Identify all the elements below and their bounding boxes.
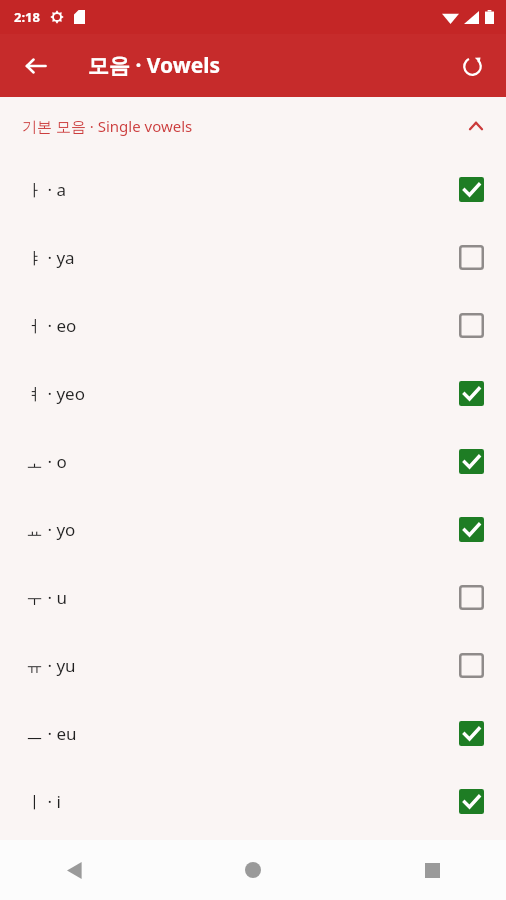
button[interactable]: ㅜ · u	[0, 563, 506, 631]
staticText: ㅗ · o	[26, 450, 67, 473]
staticText: ㅡ · eu	[26, 722, 77, 745]
staticText: 모음 · Vowels	[88, 51, 221, 80]
button[interactable]: Refresh	[448, 42, 496, 90]
button[interactable]: Back	[12, 42, 60, 90]
staticText: ㅑ · ya	[26, 246, 75, 269]
button[interactable]: ㅏ · a	[0, 155, 506, 223]
button[interactable]: ㅕ · yeo	[0, 359, 506, 427]
button[interactable]: ㅛ · yo	[0, 495, 506, 563]
button[interactable]: 기본 모음 · Single vowels	[0, 97, 506, 155]
button[interactable]: ㅓ · eo	[0, 291, 506, 359]
staticText: ㅣ · i	[26, 790, 61, 813]
button[interactable]: ㅡ · eu	[0, 699, 506, 767]
staticText: ㅛ · yo	[26, 518, 76, 541]
staticText: ㅕ · yeo	[26, 382, 85, 405]
staticText: 2:18	[14, 8, 40, 26]
button[interactable]: Recents	[408, 846, 456, 894]
button[interactable]: ㅗ · o	[0, 427, 506, 495]
button[interactable]: Home	[229, 846, 277, 894]
staticText: 기본 모음 · Single vowels	[22, 116, 193, 136]
button[interactable]: ㅑ · ya	[0, 223, 506, 291]
staticText: ㅠ · yu	[26, 654, 76, 677]
staticText: ㅜ · u	[26, 586, 67, 609]
button[interactable]: ㅠ · yu	[0, 631, 506, 699]
staticText: ㅏ · a	[26, 178, 66, 201]
button[interactable]: ㅣ · i	[0, 767, 506, 835]
button[interactable]: Back	[50, 846, 98, 894]
staticText: ㅓ · eo	[26, 314, 77, 337]
